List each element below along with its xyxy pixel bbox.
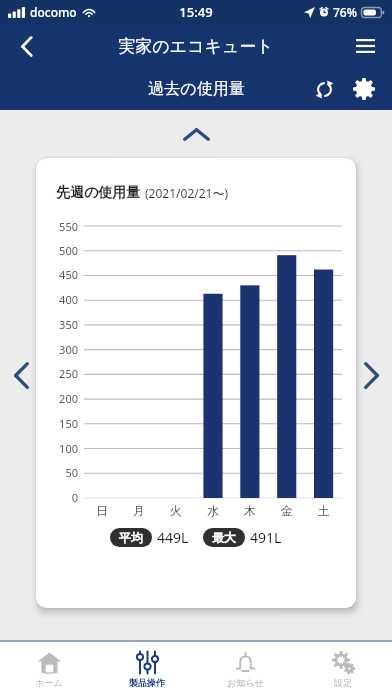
staticText: 50 <box>65 465 78 480</box>
staticText: 550 <box>59 219 78 234</box>
button[interactable]: Menu <box>338 24 392 68</box>
staticText: 0 <box>71 490 78 505</box>
button[interactable]: Back <box>0 24 54 68</box>
staticText: 製品操作 <box>129 677 165 688</box>
staticText: 最大 <box>212 530 236 545</box>
staticText: 平均 <box>119 530 143 545</box>
staticText: 400 <box>59 292 78 307</box>
staticText: 449L <box>157 528 189 547</box>
staticText: 水 <box>207 503 219 518</box>
button[interactable]: Next <box>353 348 389 402</box>
staticText: 土 <box>318 503 330 518</box>
staticText: 491L <box>250 528 282 547</box>
button[interactable]: お知らせ <box>196 642 294 696</box>
staticText: 450 <box>59 267 78 282</box>
button[interactable]: 製品操作 <box>98 642 196 696</box>
staticText: 火 <box>170 503 182 518</box>
staticText: 350 <box>59 317 78 332</box>
staticText: お知らせ <box>227 677 264 688</box>
staticText: 200 <box>59 391 78 406</box>
button[interactable]: Previous <box>3 348 39 402</box>
staticText: 設定 <box>334 677 352 688</box>
staticText: 76% <box>333 4 357 20</box>
staticText: 100 <box>59 441 78 456</box>
staticText: 金 <box>281 503 293 518</box>
staticText: 15:49 <box>179 3 213 21</box>
staticText: (2021/02/21〜) <box>145 185 229 201</box>
staticText: 実家のエコキュート <box>118 36 274 57</box>
staticText: ホーム <box>35 677 63 688</box>
staticText: 300 <box>59 342 78 357</box>
staticText: 月 <box>133 503 145 518</box>
staticText: 先週の使用量 <box>56 184 141 202</box>
button[interactable]: Refresh <box>304 69 344 109</box>
button[interactable]: Collapse <box>166 124 226 144</box>
button[interactable]: ホーム <box>0 642 98 696</box>
staticText: 日 <box>96 503 108 518</box>
staticText: docomo <box>30 4 77 20</box>
staticText: 木 <box>244 503 256 518</box>
staticText: 過去の使用量 <box>148 79 245 99</box>
staticText: 500 <box>59 243 78 258</box>
button[interactable]: 設定 <box>294 642 392 696</box>
staticText: 150 <box>59 416 78 431</box>
button[interactable]: Settings <box>344 69 384 109</box>
staticText: 250 <box>59 366 78 381</box>
